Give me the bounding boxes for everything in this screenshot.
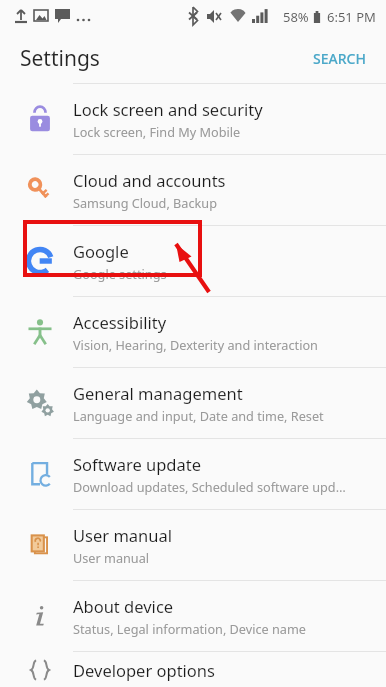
staticText: Cloud and accounts [73,169,226,191]
button[interactable]: Software update [0,439,386,509]
staticText: Samsung Cloud, Backup [73,194,217,211]
staticText: General management [73,382,243,404]
button[interactable]: User manual [0,510,386,580]
staticText: Google [73,240,129,262]
staticText: About device [73,595,174,617]
staticText: Developer options [73,659,215,681]
staticText: SEARCH [313,49,366,68]
staticText: Software update [73,453,201,475]
staticText: Lock screen and security [73,98,263,120]
staticText: Lock screen, Find My Mobile [73,123,241,140]
staticText: Google settings [73,265,167,282]
button[interactable]: Google [0,226,386,296]
staticText: Status, Legal information, Device name [73,620,307,637]
staticText: Download updates, Scheduled software upd… [73,478,346,495]
staticText: 6:51 PM [327,8,376,26]
button[interactable]: General management [0,368,386,438]
staticText: Vision, Hearing, Dexterity and interacti… [73,336,318,353]
staticText: Settings [20,44,100,73]
button[interactable]: Developer options [0,652,386,687]
button[interactable]: About device [0,581,386,651]
staticText: Language and input, Date and time, Reset [73,407,324,424]
button[interactable]: SEARCH [309,43,370,74]
staticText: Accessibility [73,311,167,333]
staticText: 58% [283,8,309,26]
button[interactable]: Cloud and accounts [0,155,386,225]
button[interactable]: Lock screen and security [0,84,386,154]
staticText: User manual [73,549,150,566]
staticText: User manual [73,524,172,546]
button[interactable]: Accessibility [0,297,386,367]
